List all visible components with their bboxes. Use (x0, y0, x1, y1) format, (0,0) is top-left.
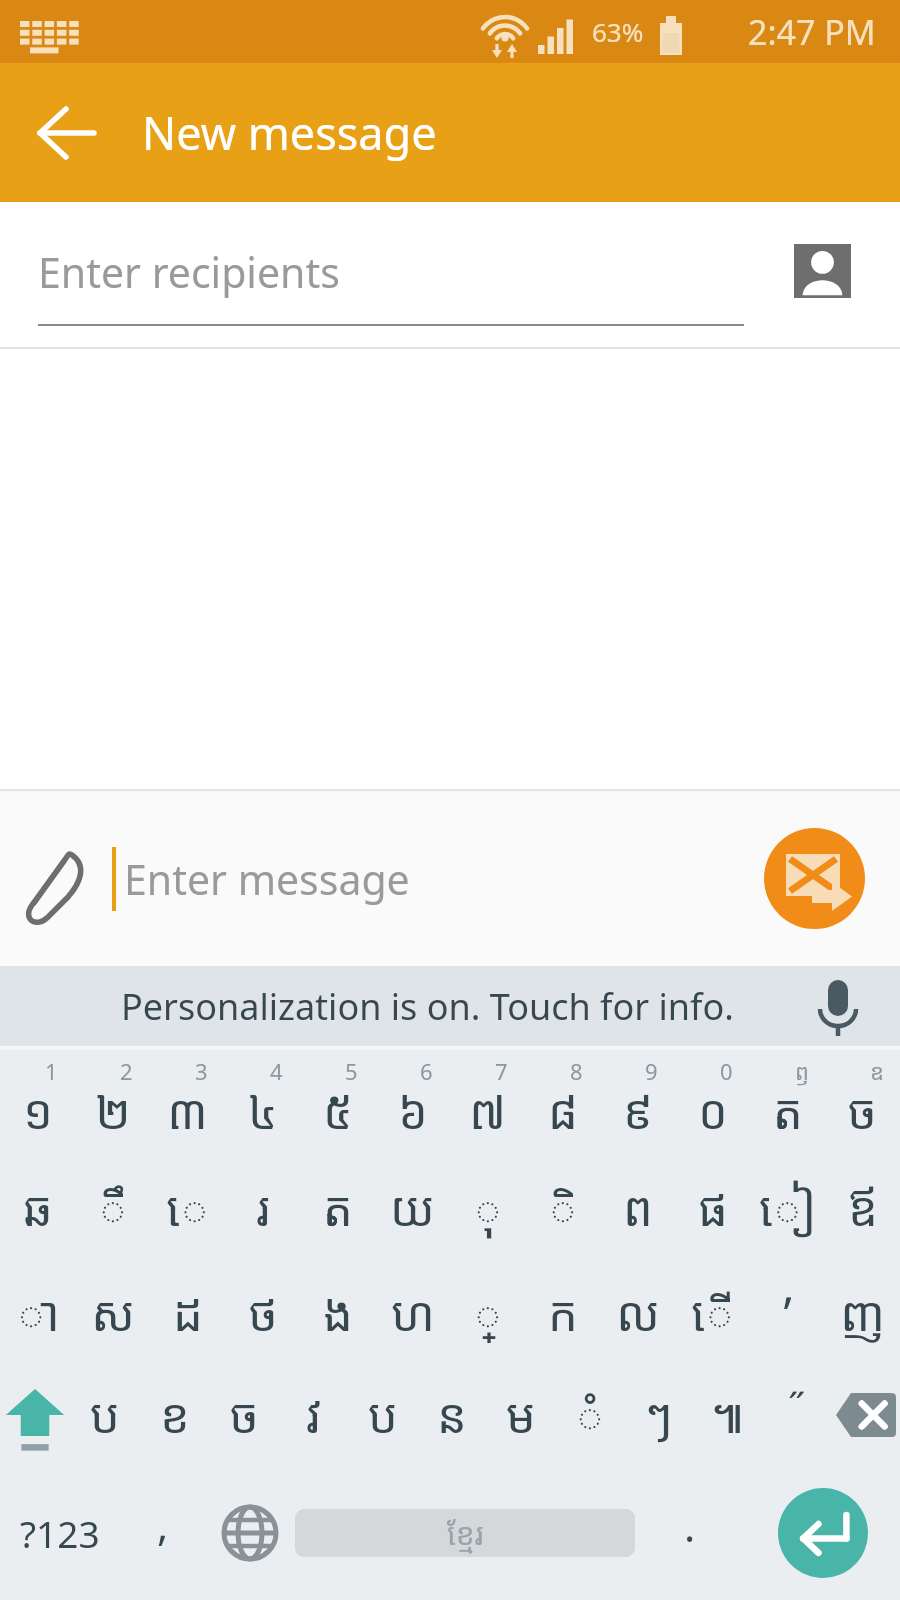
button[interactable]: ន (417, 1365, 486, 1465)
button[interactable]: 6 (375, 1050, 450, 1155)
staticText: ៣ (167, 1079, 208, 1143)
button[interactable]: ិ (525, 1155, 600, 1260)
staticText: 63% (592, 14, 644, 49)
button[interactable]: ា (0, 1260, 75, 1365)
button[interactable]: ឭ (750, 1050, 825, 1155)
button[interactable]: ក (525, 1260, 600, 1365)
staticText: ៗ (645, 1383, 673, 1447)
staticText: ញ (840, 1281, 885, 1345)
staticText: ដ (173, 1281, 203, 1345)
button[interactable]: Voice input (806, 974, 870, 1038)
staticText: ៧ (469, 1079, 506, 1143)
button[interactable]: ម (486, 1365, 555, 1465)
button[interactable]: 0 (675, 1050, 750, 1155)
staticText: 1 (45, 1056, 58, 1086)
button[interactable]: ល (600, 1260, 675, 1365)
button[interactable]: ព (600, 1155, 675, 1260)
button[interactable]: Attach (20, 841, 96, 917)
staticText: ២ (95, 1079, 131, 1143)
staticText: ˝ (788, 1379, 806, 1433)
button[interactable]: វ (279, 1365, 348, 1465)
button[interactable]: ឆ (0, 1155, 75, 1260)
button[interactable]: យ (375, 1155, 450, 1260)
staticText: ស (91, 1281, 135, 1345)
staticText: ក (548, 1281, 578, 1345)
staticText: ប (368, 1383, 398, 1447)
staticText: ០ (698, 1079, 728, 1143)
button[interactable]: េ (150, 1155, 225, 1260)
staticText: 7 (495, 1056, 508, 1086)
button[interactable]: 9 (600, 1050, 675, 1155)
staticText: ឭ (795, 1056, 809, 1086)
button[interactable]: 8 (525, 1050, 600, 1155)
staticText: ១ (23, 1079, 53, 1143)
button[interactable]: ង (300, 1260, 375, 1365)
staticText: ៨ (548, 1079, 578, 1143)
staticText: វ (306, 1383, 322, 1447)
button[interactable]: ប (348, 1365, 417, 1465)
button[interactable]: ច (210, 1365, 279, 1465)
button[interactable]: ្ (450, 1260, 525, 1365)
button[interactable]: Enter message (124, 851, 410, 907)
staticText: 4 (270, 1056, 283, 1086)
button[interactable]: ៕ (693, 1365, 762, 1465)
button[interactable]: Enter recipients (38, 244, 340, 300)
staticText: ព (623, 1176, 653, 1240)
button[interactable]: ៀ (750, 1155, 825, 1260)
button[interactable]: ប (70, 1365, 140, 1465)
button[interactable]: Backspace (831, 1365, 900, 1465)
button[interactable]: 4 (225, 1050, 300, 1155)
staticText: 3 (195, 1056, 208, 1086)
button[interactable]: Personalization is on. Touch for info. (121, 982, 734, 1031)
button[interactable]: ឪ (825, 1155, 900, 1260)
button[interactable]: Shift (0, 1365, 70, 1465)
staticText: ើ (691, 1281, 735, 1345)
button[interactable]: Space (295, 1509, 635, 1557)
button[interactable]: ឧ (825, 1050, 900, 1155)
button[interactable]: ៗ (624, 1365, 693, 1465)
button[interactable]: ʼ (750, 1260, 825, 1365)
button[interactable]: រ (225, 1155, 300, 1260)
button[interactable]: Enter (778, 1488, 868, 1578)
button[interactable]: . (635, 1465, 745, 1600)
staticText: 2 (120, 1056, 133, 1086)
button[interactable]: , (120, 1465, 205, 1600)
staticText: ត (773, 1079, 803, 1143)
button[interactable]: 3 (150, 1050, 225, 1155)
button[interactable]: Change language (205, 1465, 295, 1600)
button[interactable]: ស (75, 1260, 150, 1365)
button[interactable]: 1 (0, 1050, 75, 1155)
button[interactable]: ើ (675, 1260, 750, 1365)
staticText: ?123 (20, 1508, 100, 1558)
button[interactable]: Send (764, 828, 865, 929)
staticText: ង (323, 1281, 353, 1345)
button[interactable]: ុ (450, 1155, 525, 1260)
button[interactable]: Back (30, 97, 102, 169)
button[interactable]: 5 (300, 1050, 375, 1155)
button[interactable]: 2 (75, 1050, 150, 1155)
staticText: ត (323, 1176, 353, 1240)
staticText: 0 (720, 1056, 733, 1086)
staticText: ៦ (398, 1079, 428, 1143)
button[interactable]: ត (300, 1155, 375, 1260)
button[interactable]: ˝ (762, 1365, 831, 1465)
staticText: ៤ (248, 1079, 278, 1143)
staticText: ឧ (870, 1056, 884, 1086)
button[interactable]: ញ (825, 1260, 900, 1365)
staticText: ខ (160, 1383, 190, 1447)
button[interactable]: ?123 (0, 1465, 120, 1600)
staticText: ំ (575, 1383, 605, 1447)
button[interactable]: Choose contact (794, 244, 851, 298)
button[interactable]: ំ (555, 1365, 624, 1465)
button[interactable]: ហ (375, 1260, 450, 1365)
button[interactable]: ខ (140, 1365, 210, 1465)
staticText: ថ (248, 1281, 278, 1345)
button[interactable]: ថ (225, 1260, 300, 1365)
button[interactable]: ដ (150, 1260, 225, 1365)
staticText: ៩ (623, 1079, 653, 1143)
button[interactable]: ផ (675, 1155, 750, 1260)
button[interactable]: 7 (450, 1050, 525, 1155)
staticText: 9 (645, 1056, 658, 1086)
button[interactable]: ឹ (75, 1155, 150, 1260)
staticText: ា (16, 1281, 60, 1345)
